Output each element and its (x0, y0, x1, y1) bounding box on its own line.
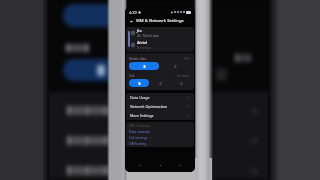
button[interactable]: Back (128, 18, 134, 24)
staticText: Jio (137, 28, 142, 33)
button[interactable]: Data roaming (129, 129, 154, 135)
button[interactable]: Home (157, 162, 164, 169)
staticText: Data Usage (130, 95, 150, 100)
button[interactable]: More Settings (130, 111, 190, 120)
button[interactable]: Jio (131, 27, 194, 39)
button[interactable]: Airtel (131, 39, 194, 51)
staticText: Ask always (177, 74, 191, 78)
staticText: More Settings (130, 113, 154, 118)
button[interactable]: Call settings (129, 135, 152, 141)
staticText: SIM & Network Settings (136, 18, 184, 24)
button[interactable]: Back (176, 162, 183, 169)
button[interactable]: Network Optimization (130, 102, 190, 111)
button[interactable]: SIM locking (129, 141, 151, 147)
staticText: SIM 1 settings (129, 124, 151, 128)
button[interactable]: Recents (137, 162, 144, 169)
staticText: 4:29 (129, 10, 137, 15)
button[interactable]: Mobile data SIM 1 (129, 62, 159, 70)
staticText: SIM locking (129, 142, 147, 146)
staticText: 4G - Mobile data (137, 34, 159, 38)
staticText: Call (129, 74, 135, 78)
staticText: Mobile data (129, 57, 147, 61)
button[interactable]: Call SIM 1 (129, 79, 149, 87)
button[interactable]: Call SIM 3 (171, 79, 191, 87)
button[interactable]: Mobile data SIM 2 (160, 62, 191, 70)
button[interactable]: Call SIM 2 (150, 79, 170, 87)
staticText: Call settings (129, 136, 148, 140)
staticText: Data roaming (129, 130, 150, 134)
staticText: No service (137, 46, 151, 50)
staticText: SIM 1 (184, 57, 191, 61)
staticText: Airtel (137, 40, 148, 45)
staticText: Network Optimization (130, 104, 168, 109)
button[interactable]: Data Usage (130, 93, 190, 102)
